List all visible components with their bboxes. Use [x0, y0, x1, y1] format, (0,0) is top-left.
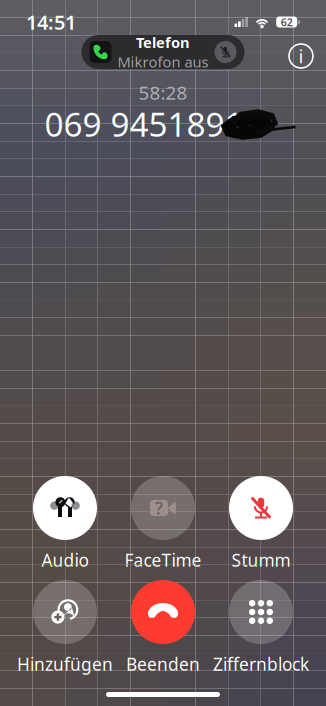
staticText: Hinzufügen	[17, 652, 113, 675]
staticText: 069 9451891	[44, 102, 243, 146]
staticText: Mikrofon aus	[117, 52, 208, 71]
button[interactable]: ?	[114, 476, 212, 580]
staticText: Audio	[41, 548, 88, 571]
staticText: FaceTime	[124, 548, 201, 571]
staticText: i	[298, 44, 303, 68]
staticText: Beenden	[126, 652, 200, 675]
staticText: ?	[155, 496, 163, 519]
button[interactable]: Audio	[16, 476, 114, 580]
button[interactable]: Mikrofon stumm	[214, 41, 236, 63]
button[interactable]: Stumm	[212, 476, 310, 580]
staticText: Stumm	[231, 548, 290, 571]
button[interactable]: Ziffernblock	[212, 580, 310, 684]
staticText: Telefon	[136, 32, 190, 52]
staticText: Ziffernblock	[213, 652, 309, 675]
staticText: 58:28	[138, 80, 187, 105]
button[interactable]: Beenden	[114, 580, 212, 684]
button[interactable]: Info	[286, 41, 316, 71]
button[interactable]: Hinzufügen	[16, 580, 114, 684]
staticText: 14:51	[26, 9, 76, 35]
staticText: 62	[281, 15, 293, 29]
